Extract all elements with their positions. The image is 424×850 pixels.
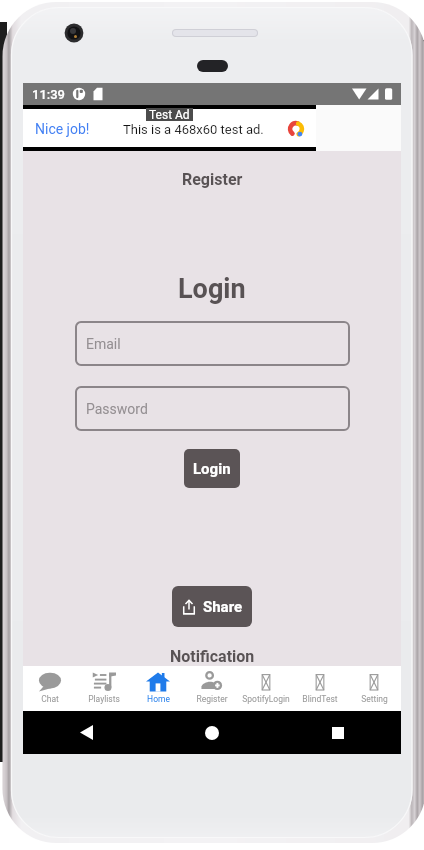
button[interactable]: Share xyxy=(172,586,252,627)
staticText: Register xyxy=(182,170,243,189)
button[interactable]: Home xyxy=(149,711,275,754)
button[interactable]: Back xyxy=(23,711,149,754)
staticText: This is a 468x60 test ad. xyxy=(123,122,264,137)
staticText: Nice job! xyxy=(35,121,90,137)
button[interactable]: BlindTest xyxy=(293,666,347,711)
staticText: 11:39 xyxy=(32,87,66,102)
button[interactable]: Chat xyxy=(23,666,77,711)
staticText: Playlists xyxy=(88,694,120,704)
staticText: Home xyxy=(147,694,170,704)
staticText: Chat xyxy=(41,694,59,704)
button[interactable]: Login xyxy=(184,449,240,488)
staticText: Email xyxy=(86,336,121,352)
button[interactable]: SpotifyLogin xyxy=(239,666,293,711)
button[interactable]: Password xyxy=(75,386,350,431)
button[interactable]: Playlists xyxy=(77,666,131,711)
button[interactable]: Email xyxy=(75,321,350,366)
button[interactable]: Recent apps xyxy=(275,711,401,754)
button[interactable]: Home xyxy=(131,666,185,711)
staticText: BlindTest xyxy=(302,694,338,704)
staticText: Test Ad xyxy=(149,108,190,121)
staticText: Notification xyxy=(170,647,255,666)
staticText: Share xyxy=(203,598,243,616)
staticText: Login xyxy=(178,273,246,305)
staticText: Login xyxy=(193,460,231,478)
staticText: SpotifyLogin xyxy=(242,694,290,704)
staticText: Setting xyxy=(361,694,388,704)
staticText: Register xyxy=(196,694,228,704)
staticText: Password xyxy=(86,401,148,417)
button[interactable]: Setting xyxy=(347,666,401,711)
button[interactable]: Register xyxy=(185,666,239,711)
